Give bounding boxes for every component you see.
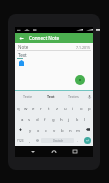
staticText: ,	[29, 138, 31, 143]
button[interactable]: Textes	[62, 91, 85, 102]
staticText: m	[76, 127, 81, 133]
staticText: n	[69, 127, 72, 133]
staticText: Texte	[23, 94, 32, 99]
staticText: j	[68, 116, 70, 122]
button[interactable]: z	[53, 102, 61, 113]
button[interactable]: r	[37, 102, 45, 113]
button[interactable]: q	[15, 102, 22, 113]
button[interactable]: c	[42, 124, 50, 135]
staticText: w	[24, 105, 28, 111]
staticText: x	[37, 127, 40, 133]
staticText: s	[28, 116, 31, 122]
button[interactable]: w	[22, 102, 29, 113]
button[interactable]: o	[77, 102, 85, 113]
button[interactable]: k	[73, 113, 81, 124]
staticText: t	[48, 105, 50, 111]
button[interactable]: l	[81, 113, 89, 124]
button[interactable]: Text	[39, 91, 62, 102]
staticText: y	[29, 127, 32, 133]
button[interactable]: Backspace	[82, 124, 93, 135]
button[interactable]: Recents	[68, 146, 82, 157]
button[interactable]: Back	[26, 146, 40, 157]
staticText: ?123	[17, 139, 24, 143]
button[interactable]: y	[26, 124, 34, 135]
button[interactable]: u	[61, 102, 69, 113]
button[interactable]: e	[29, 102, 37, 113]
button[interactable]: Shift	[15, 124, 26, 135]
staticText: Textes	[68, 94, 79, 99]
staticText: a	[21, 116, 24, 122]
button[interactable]: n	[66, 124, 74, 135]
button[interactable]: t	[45, 102, 53, 113]
button[interactable]: x	[34, 124, 42, 135]
button[interactable]: ,	[26, 135, 33, 146]
staticText: .	[77, 138, 79, 143]
staticText: i	[72, 105, 74, 111]
button[interactable]: f	[41, 113, 49, 124]
staticText: 7.1.2015	[76, 45, 90, 50]
staticText: e	[32, 105, 35, 111]
staticText: Text	[18, 52, 27, 58]
button[interactable]: g	[49, 113, 57, 124]
staticText: Text	[47, 94, 55, 99]
staticText: Note	[18, 44, 29, 50]
staticText: Connect Note	[29, 35, 60, 41]
button[interactable]: i	[69, 102, 77, 113]
staticText: z	[56, 105, 59, 111]
staticText: o	[80, 105, 83, 111]
button[interactable]: Add	[75, 75, 85, 85]
button[interactable]: p	[85, 102, 93, 113]
button[interactable]: Texte	[15, 91, 39, 102]
staticText: k	[76, 116, 79, 122]
button[interactable]: Back	[17, 34, 26, 42]
button[interactable]: Home	[47, 146, 61, 157]
button[interactable]: Voice input	[85, 91, 93, 102]
staticText: b	[61, 127, 64, 133]
staticText: u	[64, 105, 67, 111]
button[interactable]: Note	[18, 44, 90, 50]
staticText: v	[53, 127, 56, 133]
staticText: c	[45, 127, 48, 133]
button[interactable]: Back	[15, 33, 93, 43]
button[interactable]: j	[65, 113, 73, 124]
staticText: f	[44, 116, 46, 122]
button[interactable]: Emoji	[33, 135, 41, 146]
staticText: h	[60, 116, 63, 122]
button[interactable]: ?123	[15, 135, 26, 146]
button[interactable]: Deutsch	[41, 138, 74, 143]
button[interactable]: Enter	[84, 137, 91, 144]
button[interactable]: s	[26, 113, 33, 124]
staticText: d	[36, 116, 39, 122]
button[interactable]: m	[74, 124, 82, 135]
staticText: l	[84, 116, 86, 122]
button[interactable]: d	[33, 113, 41, 124]
staticText: Deutsch	[53, 139, 63, 143]
button[interactable]: v	[50, 124, 58, 135]
staticText: q	[17, 105, 20, 111]
button[interactable]: a	[19, 113, 26, 124]
button[interactable]: b	[58, 124, 66, 135]
button[interactable]: h	[57, 113, 65, 124]
staticText: g	[52, 116, 55, 122]
staticText: p	[88, 105, 91, 111]
staticText: r	[40, 105, 42, 111]
button[interactable]: Text	[18, 52, 90, 58]
